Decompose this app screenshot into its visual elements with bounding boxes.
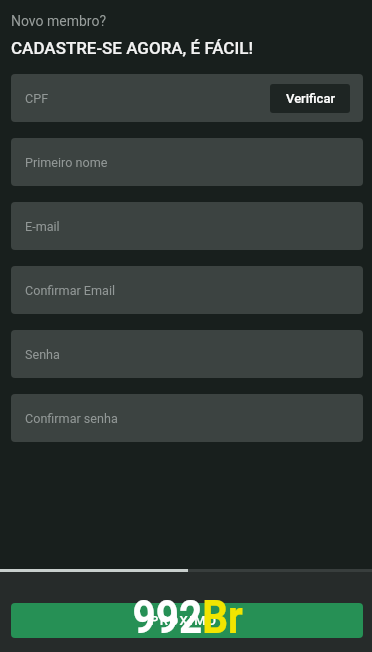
staticText: CADASTRE-SE AGORA, É FÁCIL! (11, 38, 253, 58)
staticText: Confirmar Email (25, 283, 116, 298)
button[interactable]: Senha (11, 330, 363, 378)
other: Progresso do cadastro (0, 569, 372, 572)
staticText: Verificar (286, 91, 335, 106)
staticText: Primeiro nome (25, 155, 108, 170)
staticText: 992Br (133, 590, 243, 644)
button[interactable]: Confirmar Email (11, 266, 363, 314)
button[interactable]: CPF (11, 74, 363, 122)
button[interactable]: Verificar (270, 84, 350, 113)
staticText: E-mail (25, 219, 60, 234)
button[interactable]: PRÓXIMO (11, 603, 363, 638)
staticText: PRÓXIMO (150, 613, 218, 628)
staticText: CPF (25, 91, 49, 106)
button[interactable]: Confirmar senha (11, 394, 363, 442)
button[interactable]: E-mail (11, 202, 363, 250)
button[interactable]: Primeiro nome (11, 138, 363, 186)
staticText: Confirmar senha (25, 411, 118, 426)
staticText: Novo membro? (11, 13, 107, 29)
staticText: Senha (25, 347, 60, 362)
